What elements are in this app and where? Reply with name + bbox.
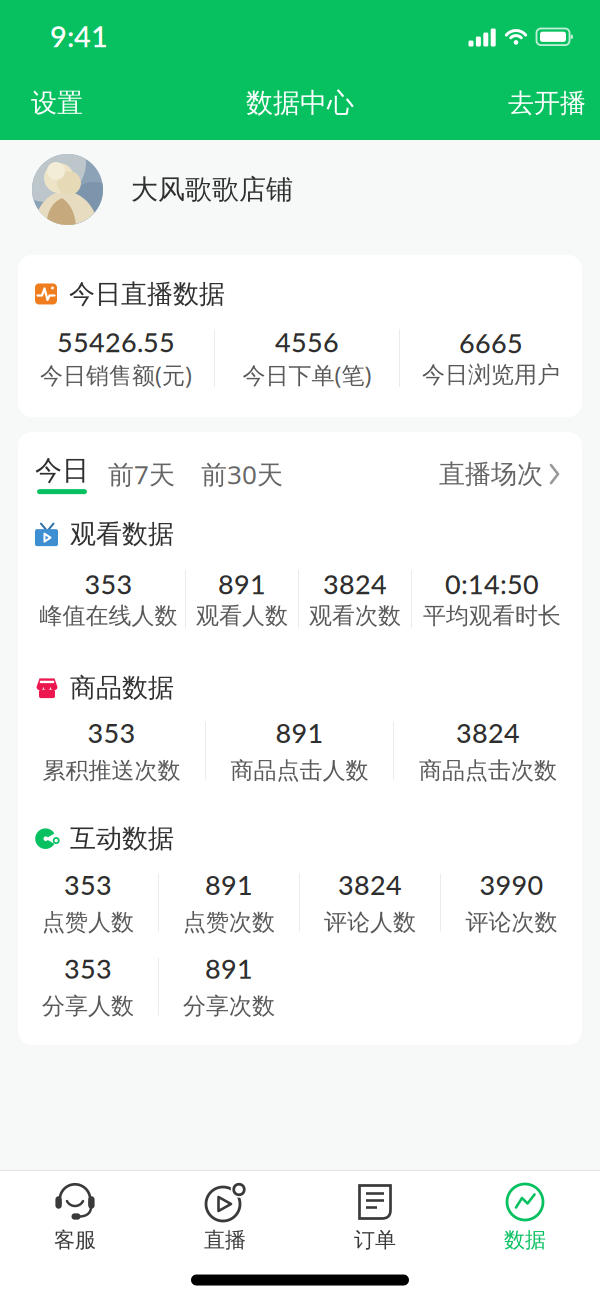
staticText: 评论人数 (324, 908, 416, 936)
staticText: 891 (275, 717, 323, 748)
button[interactable]: 数据 (450, 1182, 600, 1253)
staticText: 前30天 (201, 457, 283, 491)
staticText: 3824 (323, 568, 387, 600)
staticText: 3824 (456, 717, 520, 748)
staticText: 商品点击人数 (230, 756, 368, 785)
staticText: 3990 (479, 869, 543, 900)
staticText: 今日销售额(元) (40, 359, 192, 390)
staticText: 353 (64, 952, 112, 984)
staticText: 今日下单(笔) (242, 359, 371, 390)
staticText: 353 (84, 568, 132, 600)
staticText: 点赞人数 (42, 908, 134, 936)
button[interactable]: 前30天 (175, 457, 283, 491)
staticText: 891 (218, 568, 266, 600)
staticText: 前7天 (108, 457, 175, 491)
staticText: 直播场次 (439, 458, 543, 490)
staticText: 订单 (354, 1227, 396, 1253)
staticText: 互动数据 (70, 823, 174, 855)
staticText: 3824 (338, 869, 402, 900)
staticText: 分享次数 (183, 992, 275, 1020)
staticText: 今日 (35, 454, 89, 487)
button[interactable]: 设置 (21, 79, 93, 127)
staticText: 点赞次数 (183, 908, 275, 936)
staticText: 设置 (31, 87, 83, 119)
staticText: 353 (87, 717, 135, 748)
staticText: 数据 (504, 1227, 546, 1253)
button[interactable]: 前7天 (89, 457, 175, 491)
staticText: 观看数据 (70, 518, 174, 550)
staticText: 直播 (204, 1227, 246, 1253)
button[interactable]: 订单 (300, 1182, 450, 1253)
staticText: 今日浏览用户 (422, 361, 560, 389)
staticText: 9:41 (50, 19, 108, 53)
button[interactable]: 客服 (0, 1182, 150, 1253)
button[interactable]: 直播 (150, 1182, 300, 1253)
staticText: 大风歌歌店铺 (131, 173, 293, 206)
staticText: 55426.55 (57, 326, 175, 357)
staticText: 评论次数 (465, 908, 557, 936)
staticText: 峰值在线人数 (39, 602, 177, 630)
staticText: 观看人数 (196, 602, 288, 630)
button[interactable]: 今日 (35, 454, 89, 494)
staticText: 0:14:50 (445, 568, 539, 600)
staticText: 今日直播数据 (69, 278, 225, 310)
staticText: 4556 (275, 326, 339, 357)
button[interactable]: 直播场次 (439, 458, 561, 490)
staticText: 数据中心 (246, 86, 354, 120)
staticText: 商品数据 (70, 672, 174, 704)
staticText: 891 (205, 869, 253, 900)
staticText: 353 (64, 869, 112, 900)
staticText: 891 (205, 952, 253, 984)
staticText: 分享人数 (42, 992, 134, 1020)
staticText: 去开播 (508, 87, 586, 119)
staticText: 6665 (459, 327, 523, 359)
staticText: 累积推送次数 (42, 756, 180, 785)
staticText: 客服 (54, 1227, 96, 1253)
staticText: 商品点击次数 (419, 756, 557, 785)
staticText: 观看次数 (309, 602, 401, 630)
staticText: 平均观看时长 (423, 602, 561, 630)
button[interactable]: 去开播 (498, 79, 596, 127)
